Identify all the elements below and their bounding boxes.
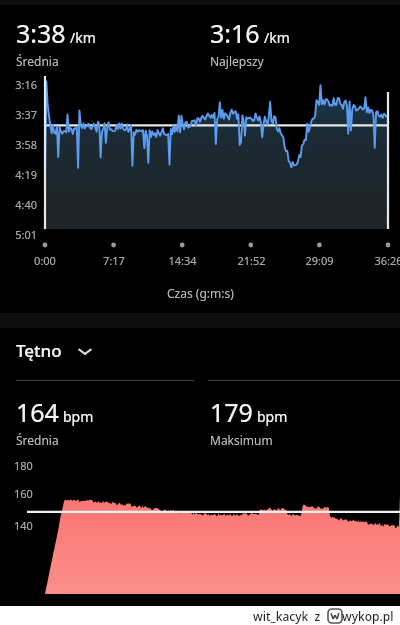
staticText: 3:38 (16, 16, 66, 50)
staticText: /km (264, 28, 290, 47)
staticText: 3:58 (15, 137, 37, 152)
staticText: /km (70, 28, 96, 47)
staticText: 4:19 (15, 167, 37, 182)
staticText: wykop.pl (342, 608, 394, 624)
staticText: Średnia (16, 53, 59, 69)
staticText: 0:00 (34, 253, 56, 268)
staticText: 14:34 (168, 253, 197, 268)
staticText: 5:01 (15, 227, 37, 242)
button[interactable]: Tętno (0, 328, 400, 373)
staticText: Najlepszy (210, 53, 264, 69)
staticText: Czas (g:m:s) (167, 285, 234, 301)
staticText: 3:37 (15, 107, 37, 122)
staticText: 180 (14, 458, 33, 473)
staticText: 140 (14, 518, 33, 533)
staticText: bpm (257, 407, 288, 426)
staticText: wit_kacyk z (253, 608, 321, 624)
staticText: 4:40 (15, 197, 37, 212)
staticText: 7:17 (103, 253, 125, 268)
staticText: 164 (16, 395, 59, 429)
staticText: 36:26 (374, 253, 400, 268)
staticText: 21:52 (237, 253, 266, 268)
other: Expand heart rate (76, 342, 94, 360)
staticText: 3:16 (210, 16, 260, 50)
staticText: 160 (14, 486, 33, 501)
staticText: bpm (63, 407, 94, 426)
staticText: Średnia (16, 432, 59, 448)
staticText: 29:09 (305, 253, 334, 268)
staticText: Maksimum (210, 432, 273, 448)
staticText: 179 (210, 395, 253, 429)
staticText: Tętno (16, 339, 62, 362)
staticText: 3:16 (15, 77, 37, 92)
